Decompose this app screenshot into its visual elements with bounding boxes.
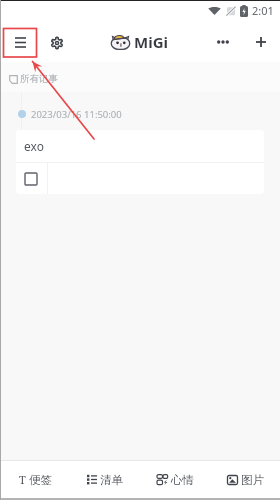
- staticText: exo: [24, 138, 44, 154]
- button[interactable]: More options: [207, 20, 241, 62]
- button[interactable]: Menu: [3, 20, 37, 62]
- staticText: 2023/03/16 11:50:00: [31, 108, 122, 121]
- button[interactable]: T: [0, 461, 70, 498]
- staticText: T: [19, 472, 26, 487]
- staticText: 心情: [171, 473, 194, 487]
- button[interactable]: exo: [16, 130, 264, 194]
- staticText: 所有记事: [20, 73, 58, 85]
- staticText: 清单: [100, 473, 123, 487]
- staticText: MiGi: [134, 32, 168, 52]
- button[interactable]: 清单: [70, 461, 140, 498]
- staticText: 便签: [29, 473, 52, 487]
- button[interactable]: 图片: [210, 461, 280, 498]
- button[interactable]: Settings: [37, 20, 71, 62]
- button[interactable]: Add: [241, 20, 275, 62]
- staticText: 图片: [241, 473, 264, 487]
- button[interactable]: 心情: [140, 461, 210, 498]
- staticText: 2:01: [252, 3, 274, 18]
